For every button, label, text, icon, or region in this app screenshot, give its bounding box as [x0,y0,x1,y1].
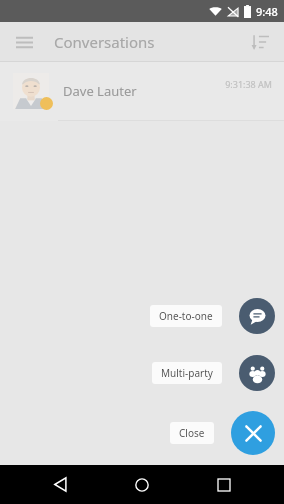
button[interactable]: Home [120,465,164,504]
button[interactable]: One-to-one [150,298,275,334]
button[interactable]: Dave Lauter [0,62,284,121]
staticText: 9:48 [256,4,278,19]
button[interactable]: Sort conversations [244,26,276,58]
button[interactable]: Recent apps [202,465,246,504]
staticText: Conversations [54,32,155,52]
button[interactable]: Close [170,411,275,455]
button[interactable]: Open navigation menu [8,26,40,58]
button[interactable]: Multi-party [152,355,275,391]
staticText: One-to-one [159,309,213,323]
staticText: 9:31:38 AM [225,78,272,90]
staticText: Close [179,426,205,440]
button[interactable]: Back [38,465,82,504]
staticText: Multi-party [161,366,213,380]
staticText: Dave Lauter [63,82,225,100]
